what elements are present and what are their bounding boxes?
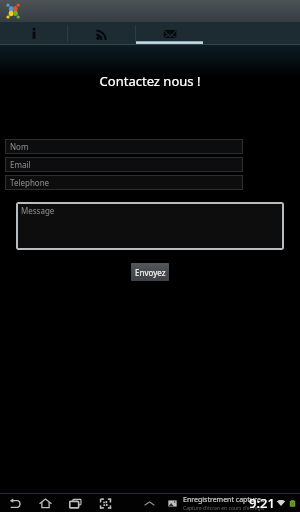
button[interactable]: Recent apps: [60, 494, 90, 512]
staticText: Capture d'écran en cours d'enregis: [183, 505, 265, 512]
staticText: Envoyez: [135, 267, 166, 278]
staticText: Nom: [10, 141, 29, 152]
button[interactable]: Expand notifications: [134, 494, 164, 512]
button[interactable]: Message: [16, 202, 284, 250]
button[interactable]: 9:21: [249, 494, 300, 512]
button[interactable]: Info: [0, 22, 67, 45]
staticText: Telephone: [10, 177, 50, 188]
button[interactable]: Joomla home: [3, 1, 23, 21]
button[interactable]: Home: [30, 494, 60, 512]
staticText: Email: [10, 159, 31, 170]
button[interactable]: Feed: [68, 22, 135, 45]
staticText: 9:21: [249, 494, 275, 512]
button[interactable]: Back: [0, 494, 30, 512]
staticText: Message: [21, 205, 55, 216]
button[interactable]: Nom: [5, 139, 243, 154]
button[interactable]: Email: [5, 157, 243, 172]
button[interactable]: Contact: [136, 22, 203, 45]
staticText: Contactez nous !: [0, 72, 300, 90]
button[interactable]: Envoyez: [131, 263, 169, 281]
button[interactable]: Telephone: [5, 175, 243, 190]
staticText: Enregistrement capture...: [183, 495, 267, 505]
button[interactable]: Screenshot: [90, 494, 120, 512]
button[interactable]: Enregistrement capture...: [167, 494, 300, 512]
